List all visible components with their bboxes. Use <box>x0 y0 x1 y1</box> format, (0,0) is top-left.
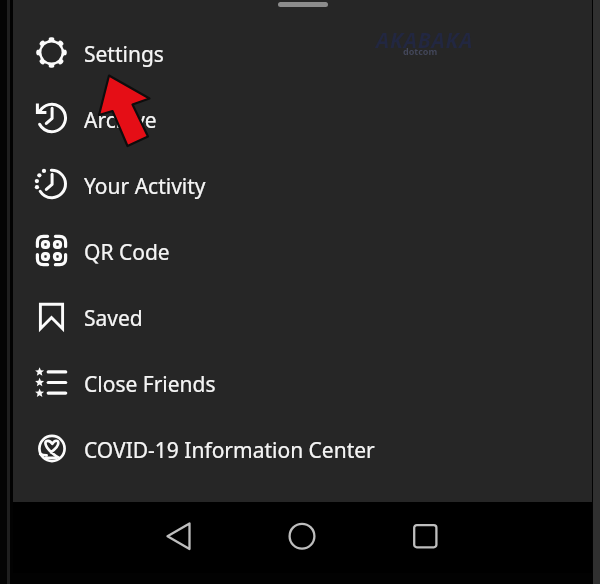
staticText: AKABAKA <box>376 26 474 55</box>
staticText: QR Code <box>84 238 170 267</box>
button[interactable]: Your Activity <box>13 151 592 217</box>
button[interactable]: Saved <box>13 283 592 349</box>
staticText: COVID-19 Information Center <box>84 436 375 465</box>
staticText: Saved <box>84 304 143 333</box>
button[interactable]: Settings <box>13 19 592 85</box>
button[interactable]: COVID-19 Information Center <box>13 415 592 481</box>
staticText: Your Activity <box>84 172 206 201</box>
button[interactable]: QR Code <box>13 217 592 283</box>
button[interactable]: Back <box>156 513 204 561</box>
button[interactable]: Home <box>278 513 326 561</box>
button[interactable]: Archive <box>13 85 592 151</box>
staticText: Close Friends <box>84 370 216 399</box>
button[interactable]: Recent apps <box>401 513 449 561</box>
button[interactable]: Close Friends <box>13 349 592 415</box>
staticText: dotcom <box>403 45 438 57</box>
staticText: Settings <box>84 40 164 69</box>
staticText: Archive <box>84 106 157 135</box>
